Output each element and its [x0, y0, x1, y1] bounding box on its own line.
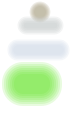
button[interactable]: Start: [0, 60, 64, 108]
button[interactable]: Profile photo: [28, 0, 52, 24]
